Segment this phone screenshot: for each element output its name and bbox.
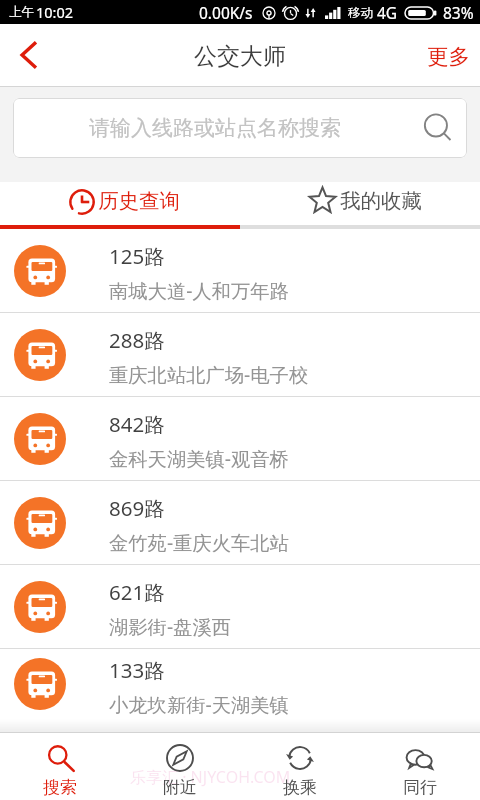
staticText: 附近 xyxy=(163,777,197,798)
staticText: 南城大道-人和万年路 xyxy=(109,277,289,303)
staticText: 同行 xyxy=(403,777,437,798)
staticText: 288路 xyxy=(109,326,165,354)
staticText: 10:02 xyxy=(36,2,74,22)
staticText: 869路 xyxy=(109,494,165,522)
staticText: 小龙坎新街-天湖美镇 xyxy=(109,691,289,717)
staticText: 移动 xyxy=(348,5,373,21)
staticText: 金科天湖美镇-观音桥 xyxy=(109,445,289,471)
button[interactable]: Back xyxy=(0,24,56,86)
button[interactable]: 125路 xyxy=(0,229,480,313)
staticText: 621路 xyxy=(109,578,165,606)
staticText: 83% xyxy=(443,2,474,23)
staticText: 公交大师 xyxy=(194,42,286,71)
button[interactable]: 搜索 xyxy=(0,733,120,800)
button[interactable]: 同行 xyxy=(360,733,480,800)
staticText: 历史查询 xyxy=(98,188,180,214)
staticText: 换乘 xyxy=(283,777,317,798)
button[interactable]: 869路 xyxy=(0,481,480,565)
staticText: 金竹苑-重庆火车北站 xyxy=(109,529,289,555)
button[interactable]: 附近 xyxy=(120,733,240,800)
staticText: 125路 xyxy=(109,242,165,270)
button[interactable]: 621路 xyxy=(0,565,480,649)
staticText: 4G xyxy=(377,2,398,23)
button[interactable]: 842路 xyxy=(0,397,480,481)
button[interactable]: 换乘 xyxy=(240,733,360,800)
staticText: 湖影街-盘溪西 xyxy=(109,613,231,639)
button[interactable]: 我的收藏 xyxy=(240,182,480,225)
button[interactable]: 133路 xyxy=(0,649,480,719)
button[interactable]: 历史查询 xyxy=(0,182,240,225)
button[interactable]: 288路 xyxy=(0,313,480,397)
button[interactable]: 更多 xyxy=(427,24,470,86)
staticText: 0.00K/s xyxy=(199,2,253,23)
staticText: 搜索 xyxy=(43,777,77,798)
button[interactable]: 请输入线路或站点名称搜索 xyxy=(13,98,467,158)
staticText: 请输入线路或站点名称搜索 xyxy=(89,115,341,141)
staticText: 我的收藏 xyxy=(340,188,422,214)
staticText: 842路 xyxy=(109,410,165,438)
staticText: 重庆北站北广场-电子校 xyxy=(109,361,309,387)
staticText: 更多 xyxy=(427,43,470,70)
staticText: 上午 xyxy=(9,4,34,20)
staticText: 乐享汇 · NJYCOH.COM xyxy=(130,766,291,788)
staticText: 133路 xyxy=(109,656,165,684)
